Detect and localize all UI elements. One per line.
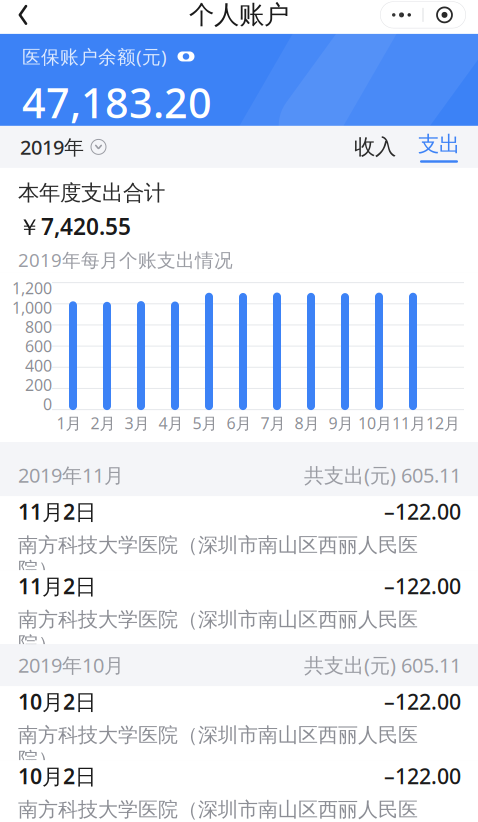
- button[interactable]: 返回: [0, 0, 46, 34]
- staticText: 个人账户: [189, 0, 289, 30]
- staticText: 47,183.20: [22, 75, 212, 130]
- staticText: –122.00: [384, 572, 461, 600]
- staticText: 200: [25, 374, 52, 395]
- staticText: 支出: [418, 131, 460, 157]
- staticText: 12月: [426, 412, 460, 434]
- staticText: 1,000: [12, 297, 52, 318]
- staticText: 7月: [260, 412, 285, 434]
- staticText: 2019年11月: [18, 462, 124, 488]
- staticText: 1月: [56, 412, 81, 434]
- button[interactable]: 支出: [404, 125, 478, 169]
- staticText: 本年度支出合计: [18, 180, 165, 206]
- staticText: 南方科技大学医院（深圳市南山区西丽人民医院）: [18, 797, 418, 822]
- staticText: 南方科技大学医院（深圳市南山区西丽人民医院）: [18, 607, 418, 656]
- staticText: 800: [25, 316, 52, 337]
- staticText: 2019年每月个账支出情况: [18, 247, 233, 272]
- staticText: 11月2日: [18, 497, 96, 526]
- staticText: 10月2日: [18, 687, 96, 716]
- staticText: 收入: [354, 134, 396, 160]
- staticText: 6月: [226, 412, 251, 434]
- staticText: 2019年10月: [18, 652, 124, 678]
- staticText: 1,200: [12, 277, 52, 299]
- button[interactable]: 10月2日: [0, 760, 478, 822]
- button[interactable]: 更多: [380, 2, 422, 28]
- staticText: 10月: [358, 412, 392, 434]
- staticText: 共支出(元) 605.11: [304, 462, 461, 488]
- staticText: –122.00: [384, 497, 461, 526]
- button[interactable]: 隐藏余额: [175, 47, 197, 65]
- staticText: 2019年: [20, 134, 84, 160]
- button[interactable]: 11月2日: [0, 570, 478, 644]
- staticText: 4月: [158, 412, 183, 434]
- staticText: 医保账户余额(元): [22, 44, 167, 69]
- button[interactable]: 收入: [346, 126, 404, 168]
- staticText: 400: [25, 355, 52, 376]
- button[interactable]: 关闭: [423, 2, 465, 28]
- staticText: 10月2日: [18, 762, 96, 790]
- staticText: –122.00: [384, 762, 461, 790]
- staticText: 11月: [392, 412, 426, 434]
- staticText: 8月: [294, 412, 319, 434]
- staticText: 3月: [124, 412, 149, 434]
- staticText: 5月: [192, 412, 217, 434]
- button[interactable]: 11月2日: [0, 496, 478, 570]
- staticText: 9月: [328, 412, 353, 434]
- staticText: 南方科技大学医院（深圳市南山区西丽人民医院）: [18, 533, 418, 582]
- button[interactable]: 10月2日: [0, 686, 478, 760]
- button[interactable]: 2019年: [0, 126, 106, 168]
- staticText: ￥7,420.55: [18, 211, 131, 241]
- staticText: 600: [25, 335, 52, 357]
- staticText: –122.00: [384, 687, 461, 716]
- staticText: 2月: [90, 412, 115, 434]
- staticText: 南方科技大学医院（深圳市南山区西丽人民医院）: [18, 723, 418, 772]
- staticText: 0: [43, 393, 52, 415]
- staticText: 共支出(元) 605.11: [304, 652, 461, 678]
- staticText: 11月2日: [18, 572, 96, 600]
